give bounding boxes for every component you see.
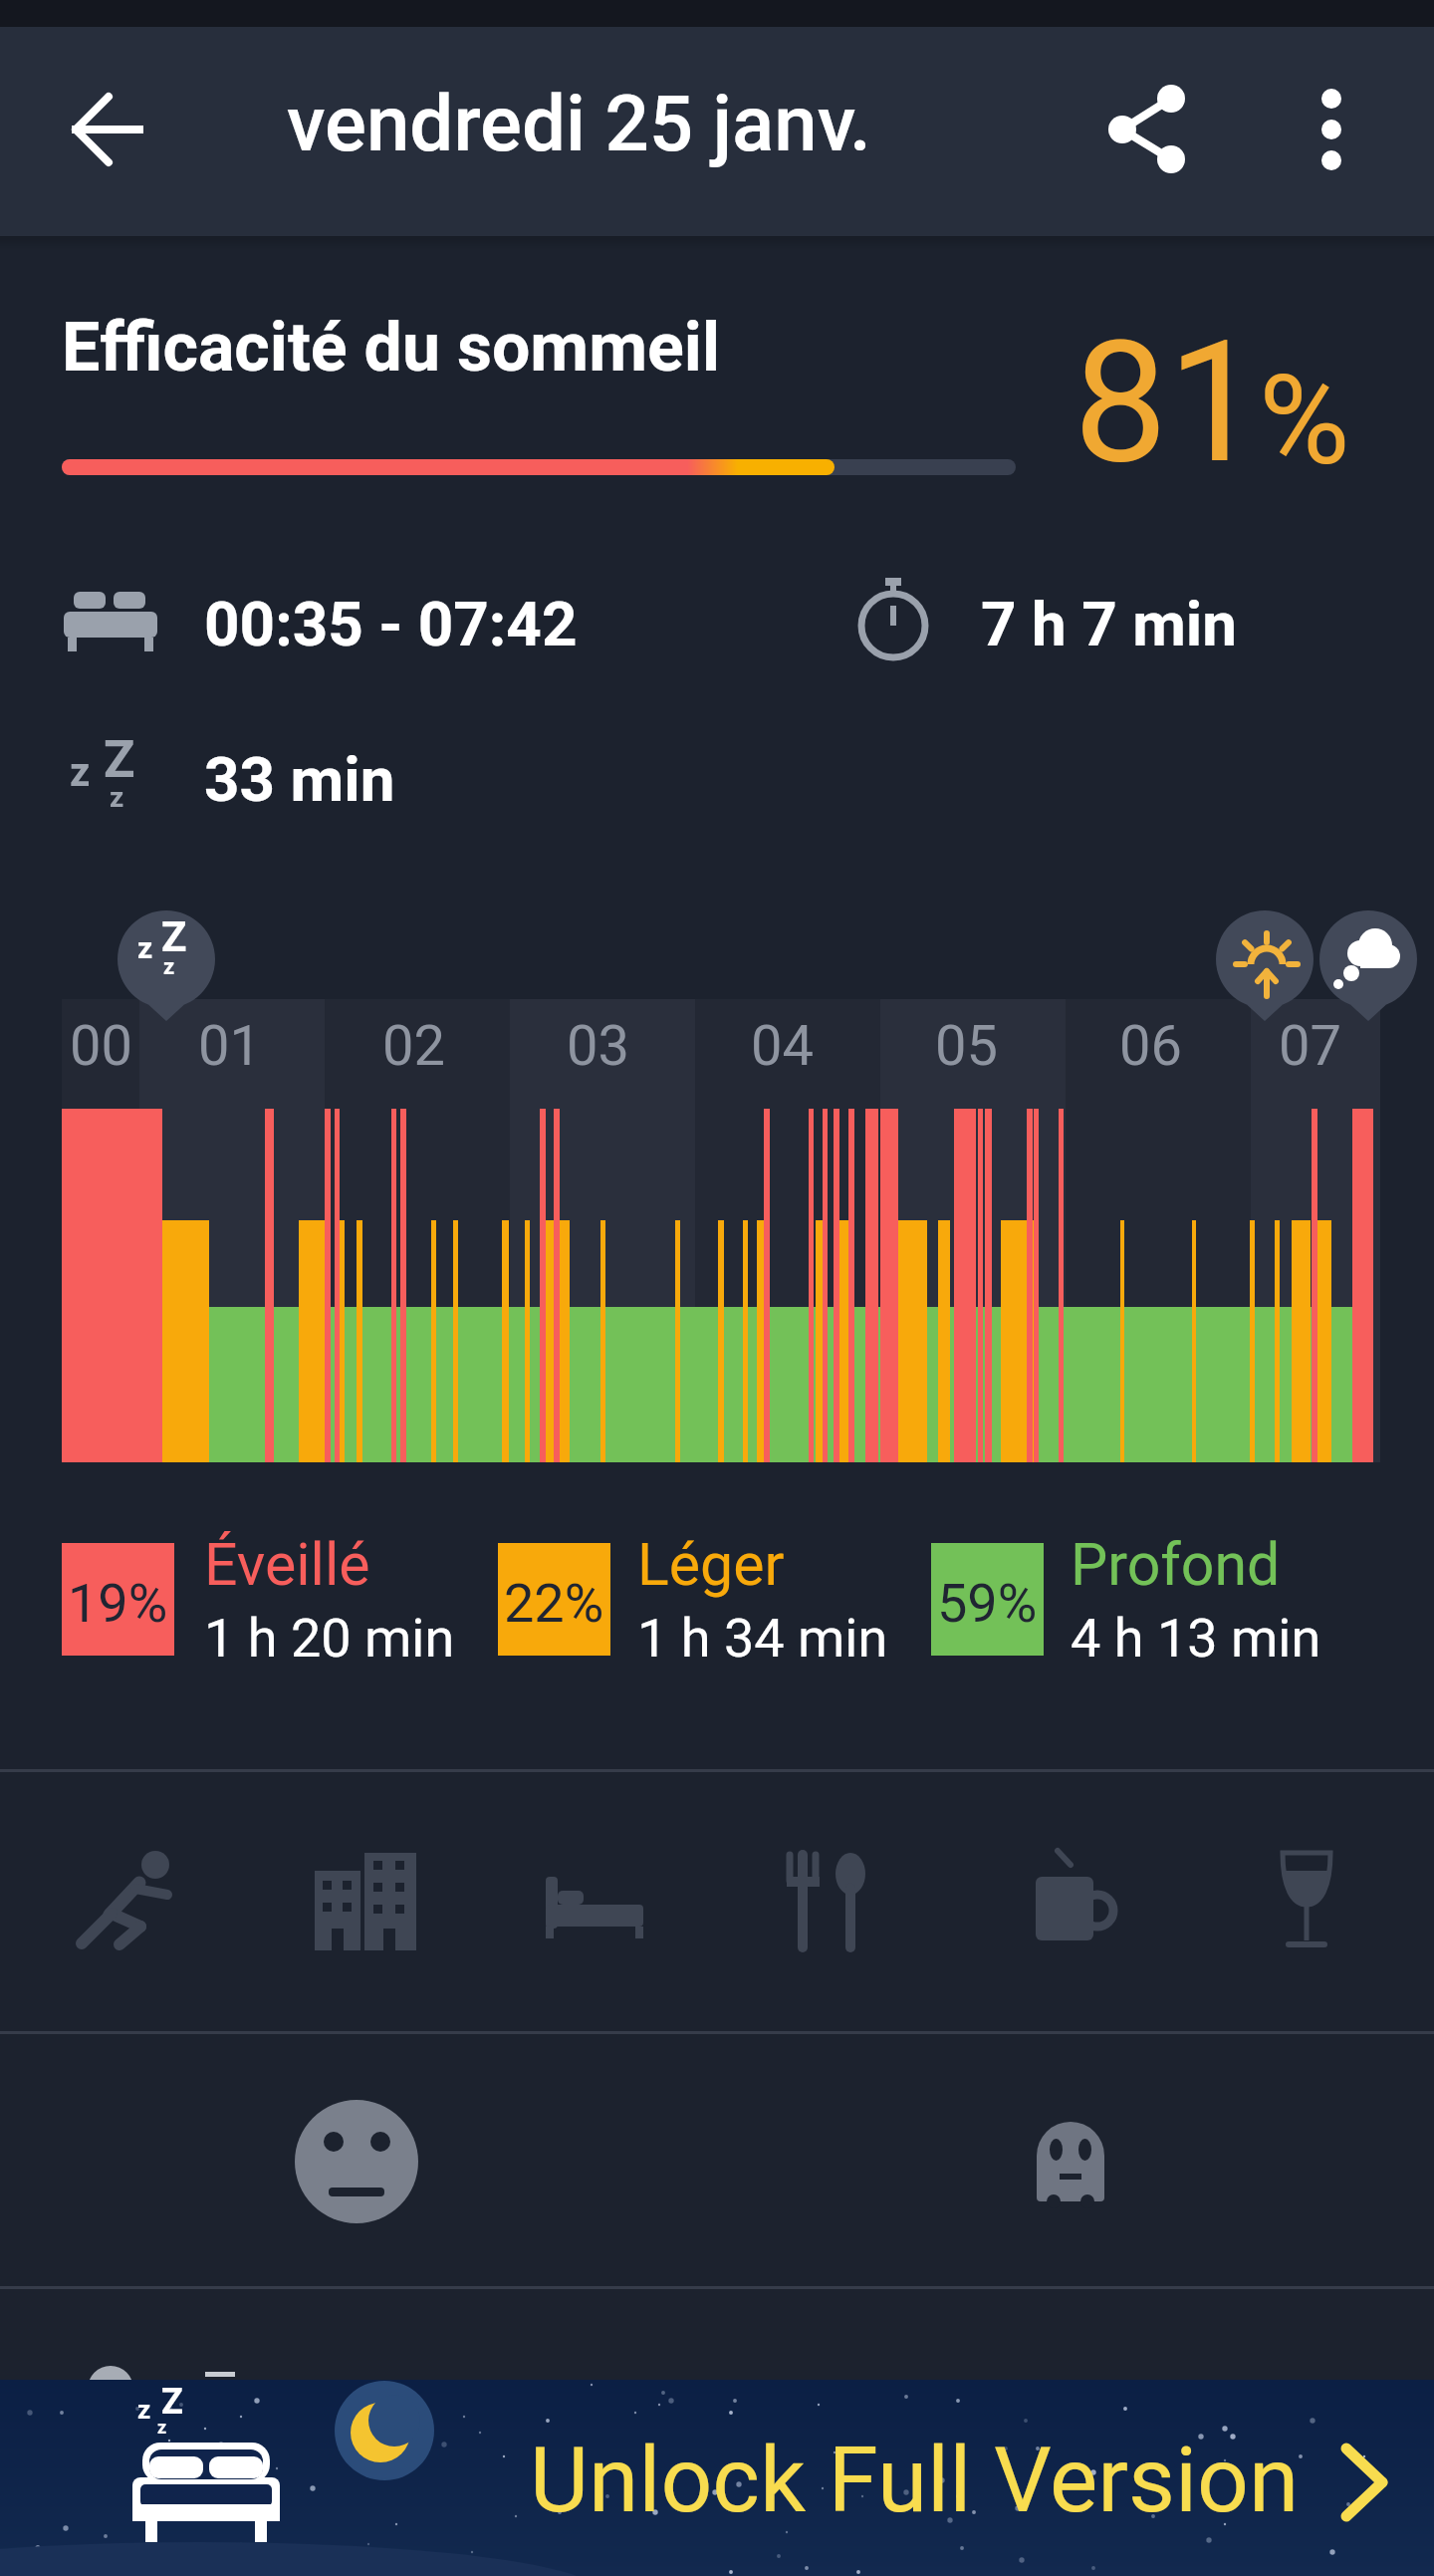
staticText: 01: [198, 1013, 261, 1079]
button[interactable]: [1298, 92, 1365, 159]
button[interactable]: [55, 1831, 194, 1970]
button[interactable]: [1009, 2100, 1132, 2223]
button[interactable]: [1113, 92, 1189, 167]
button[interactable]: [0, 2380, 1434, 2576]
staticText: z: [70, 749, 91, 796]
staticText: z: [137, 930, 153, 965]
staticText: Z: [104, 729, 135, 790]
staticText: 06: [1119, 1013, 1182, 1079]
staticText: 22%: [504, 1572, 604, 1635]
button[interactable]: [1237, 1831, 1376, 1970]
staticText: 7 h 7 min: [981, 588, 1238, 660]
button[interactable]: [289, 1831, 428, 1970]
staticText: Léger: [637, 1530, 785, 1599]
staticText: 02: [382, 1013, 445, 1079]
staticText: 07: [1279, 1013, 1341, 1079]
button[interactable]: [295, 2100, 418, 2223]
staticText: vendredi 25 janv.: [287, 79, 871, 169]
staticText: Z: [161, 912, 187, 961]
staticText: 33 min: [204, 743, 395, 816]
staticText: 00: [70, 1013, 132, 1079]
staticText: %: [1259, 348, 1350, 493]
staticText: 04: [751, 1013, 814, 1079]
staticText: 59%: [937, 1572, 1038, 1635]
staticText: 03: [567, 1013, 629, 1079]
staticText: z: [110, 781, 124, 814]
staticText: Unlock Full Version: [530, 2428, 1300, 2534]
staticText: z: [157, 2417, 167, 2438]
staticText: z: [137, 2395, 151, 2425]
staticText: z: [163, 954, 175, 980]
staticText: Efficacité du sommeil: [62, 308, 720, 387]
button[interactable]: [757, 1831, 896, 1970]
staticText: Profond: [1071, 1530, 1281, 1599]
staticText: 00:35 - 07:42: [204, 588, 578, 660]
staticText: 19%: [68, 1572, 168, 1635]
staticText: 1 h 34 min: [637, 1607, 888, 1670]
button[interactable]: [998, 1831, 1137, 1970]
staticText: 1 h 20 min: [204, 1607, 455, 1670]
staticText: 05: [935, 1013, 998, 1079]
staticText: 81: [1074, 305, 1262, 501]
staticText: 4 h 13 min: [1071, 1607, 1321, 1670]
staticText: Z: [161, 2381, 183, 2423]
button[interactable]: [60, 96, 127, 163]
button[interactable]: [520, 1831, 659, 1970]
staticText: Éveillé: [204, 1530, 370, 1599]
